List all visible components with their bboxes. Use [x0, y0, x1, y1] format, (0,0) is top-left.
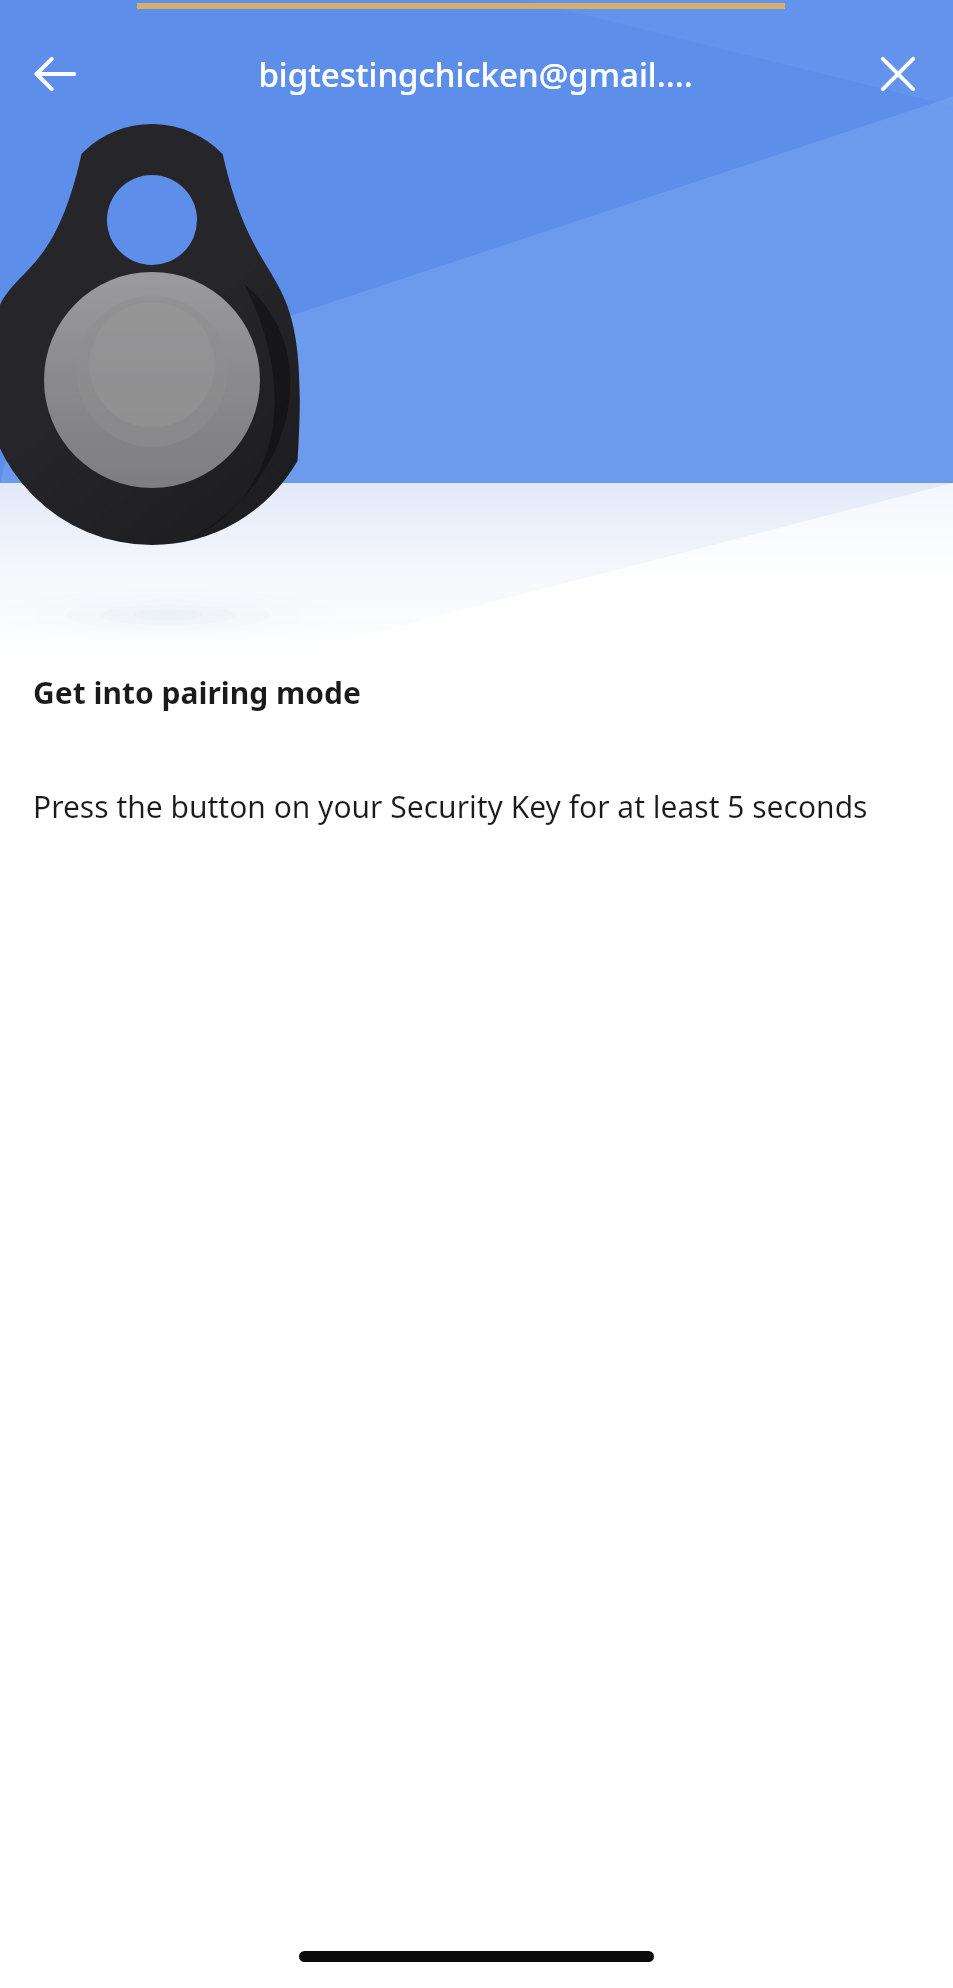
button[interactable]: Back — [14, 33, 96, 115]
staticText: bigtestingchicken@gmail.... — [258, 52, 693, 97]
staticText: Get into pairing mode — [33, 672, 361, 713]
staticText: Press the button on your Security Key fo… — [33, 786, 868, 827]
button[interactable]: Close — [857, 33, 939, 115]
